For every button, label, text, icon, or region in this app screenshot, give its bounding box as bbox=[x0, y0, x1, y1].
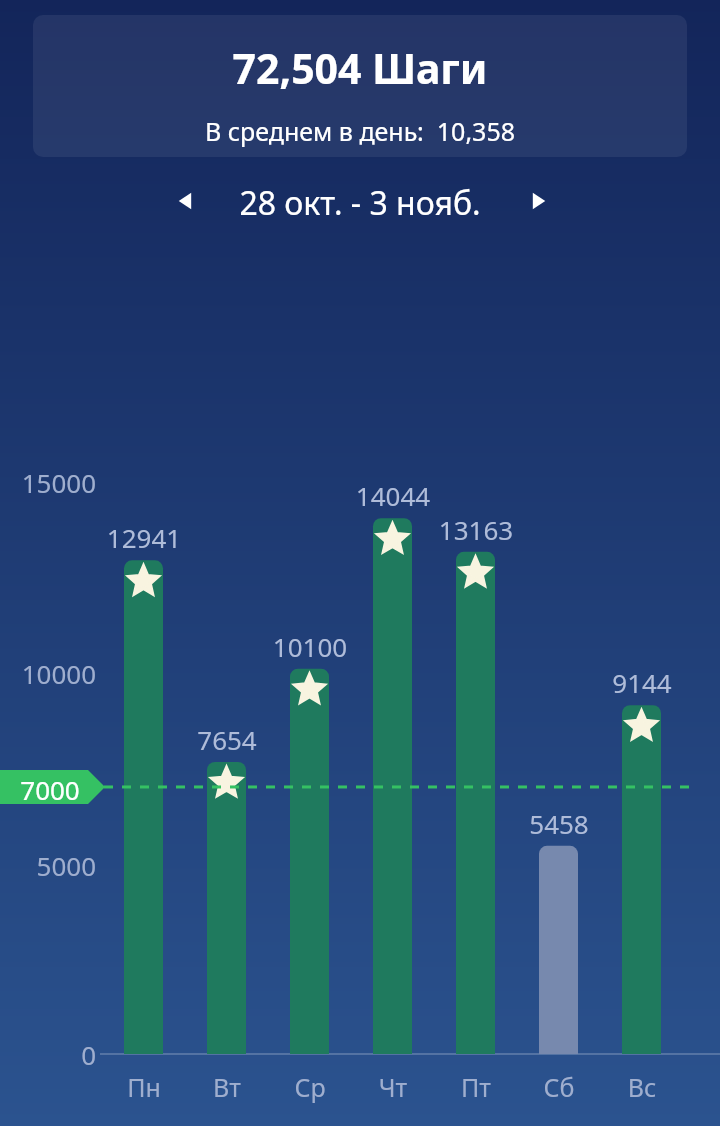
staticText: 28 окт. - 3 нояб. bbox=[215, 181, 505, 231]
staticText: 7654 bbox=[167, 722, 287, 756]
button[interactable]: 28 окт. - 3 нояб. bbox=[215, 176, 505, 226]
staticText: 10100 bbox=[250, 629, 370, 663]
staticText: 5000 bbox=[0, 848, 96, 882]
button[interactable]: Чт bbox=[353, 1070, 433, 1112]
button[interactable]: Пт bbox=[436, 1070, 516, 1112]
button[interactable]: Пн bbox=[104, 1070, 184, 1112]
button[interactable]: 72,504 Шаги bbox=[33, 15, 687, 157]
staticText: Вс bbox=[602, 1070, 682, 1112]
staticText: 5458 bbox=[499, 806, 619, 840]
staticText: 9144 bbox=[582, 665, 702, 699]
staticText: 0 bbox=[0, 1037, 96, 1071]
button[interactable]: Ср bbox=[270, 1070, 350, 1112]
staticText: 12941 bbox=[84, 520, 204, 554]
staticText: 7000 bbox=[10, 772, 90, 804]
button[interactable]: Next week bbox=[512, 175, 564, 227]
staticText: 13163 bbox=[416, 512, 536, 546]
button[interactable]: Previous week bbox=[160, 175, 212, 227]
staticText: Пт bbox=[436, 1070, 516, 1112]
staticText: 10000 bbox=[0, 656, 96, 690]
button[interactable]: Вс bbox=[602, 1070, 682, 1112]
staticText: 72,504 Шаги bbox=[33, 40, 687, 157]
staticText: В среднем в день: 10,358 bbox=[33, 114, 687, 157]
staticText: 15000 bbox=[0, 465, 96, 499]
button[interactable]: Сб bbox=[519, 1070, 599, 1112]
staticText: Ср bbox=[270, 1070, 350, 1112]
staticText: Пн bbox=[104, 1070, 184, 1112]
staticText: 14044 bbox=[333, 478, 453, 512]
button[interactable]: Вт bbox=[187, 1070, 267, 1112]
staticText: Чт bbox=[353, 1070, 433, 1112]
staticText: Вт bbox=[187, 1070, 267, 1112]
staticText: Сб bbox=[519, 1070, 599, 1112]
